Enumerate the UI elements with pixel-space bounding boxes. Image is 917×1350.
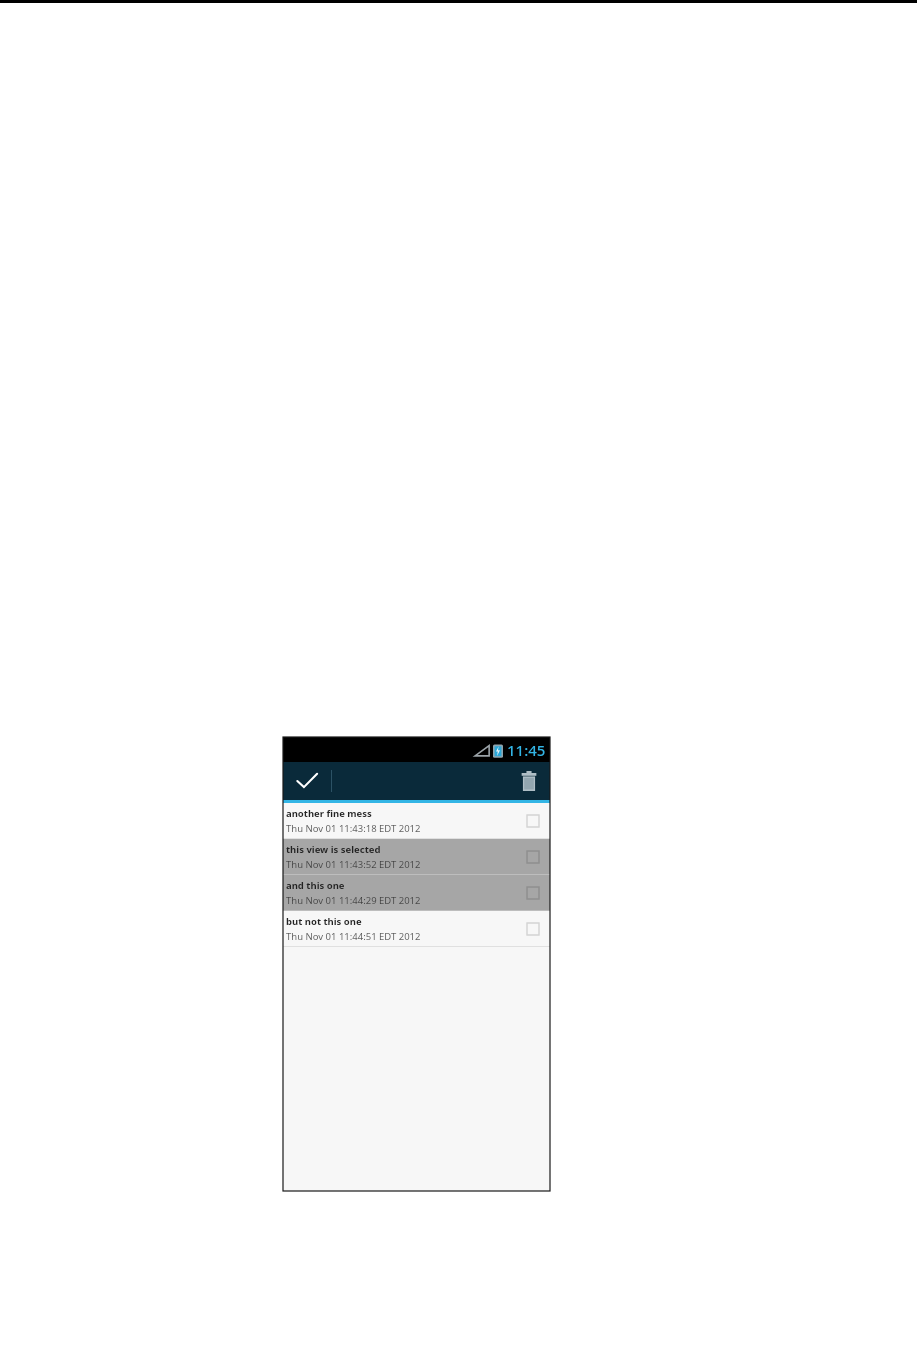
button[interactable]: and this one	[283, 875, 550, 911]
button[interactable]: Done	[283, 762, 331, 800]
button[interactable]: Select item	[518, 806, 548, 836]
staticText: and this one	[286, 879, 345, 892]
staticText: but not this one	[286, 915, 362, 928]
button[interactable]: this view is selected	[283, 839, 550, 875]
staticText: Thu Nov 01 11:43:52 EDT 2012	[286, 858, 421, 871]
button[interactable]: Select item	[518, 878, 548, 908]
button[interactable]: Select item	[518, 842, 548, 872]
staticText: Thu Nov 01 11:43:18 EDT 2012	[286, 822, 421, 835]
staticText: another fine mess	[286, 807, 372, 820]
staticText: this view is selected	[286, 843, 381, 856]
button[interactable]: Delete	[508, 762, 550, 800]
staticText: Thu Nov 01 11:44:29 EDT 2012	[286, 894, 421, 907]
button[interactable]: another fine mess	[283, 803, 550, 839]
button[interactable]: Select item	[518, 914, 548, 944]
button[interactable]: but not this one	[283, 911, 550, 947]
staticText: Thu Nov 01 11:44:51 EDT 2012	[286, 930, 421, 943]
staticText: 11:45	[507, 740, 546, 760]
